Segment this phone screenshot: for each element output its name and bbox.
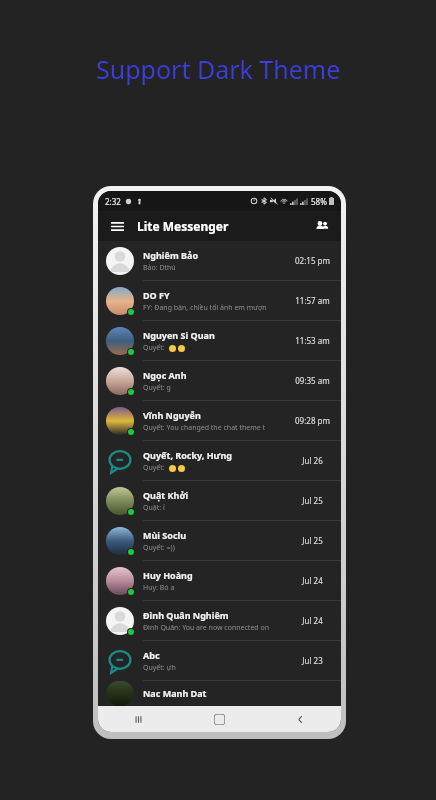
staticText: Jul 25 [302, 495, 323, 506]
button[interactable]: Open navigation menu [107, 216, 127, 236]
button[interactable]: Đình Quân Nghiêm [98, 601, 341, 641]
staticText: Quyết: ựh [143, 663, 176, 673]
button[interactable]: Nguyen Si Quan [98, 321, 341, 361]
staticText: Jul 25 [302, 535, 323, 546]
staticText: Đình Quân: You are now connected on [143, 623, 270, 633]
button[interactable]: DO FY [98, 281, 341, 321]
button[interactable]: Nac Manh Dat [98, 681, 341, 706]
staticText: 58% [311, 196, 327, 207]
staticText: Ngọc Anh [143, 369, 187, 381]
staticText: Jul 24 [302, 615, 323, 626]
staticText: 09:28 pm [295, 415, 330, 426]
button[interactable]: Abc [98, 641, 341, 681]
staticText: FY: Đang bận, chiều tối ảnh em mượn [143, 303, 267, 313]
staticText: 2:32 [105, 196, 121, 207]
staticText: 09:35 am [295, 375, 330, 386]
staticText: 02:15 pm [295, 255, 330, 266]
staticText: Nguyen Si Quan [143, 329, 215, 341]
button[interactable]: Huy Hoàng [98, 561, 341, 601]
staticText: Quyết: [143, 463, 165, 473]
button[interactable]: Nghiêm Bảo [98, 241, 341, 281]
button[interactable]: Contacts [312, 216, 332, 236]
staticText: Abc [143, 649, 160, 661]
staticText: Lite Messenger [137, 218, 229, 234]
staticText: Jul 24 [302, 575, 323, 586]
staticText: Quyết, Rocky, Hưng [143, 449, 232, 461]
staticText: Huy: Bó a [143, 583, 175, 593]
staticText: Đình Quân Nghiêm [143, 609, 229, 621]
staticText: DO FY [143, 289, 170, 301]
staticText: Jul 23 [302, 655, 323, 666]
staticText: Quyết: You changed the chat theme t [143, 423, 266, 433]
button[interactable]: Quật Khởi [98, 481, 341, 521]
staticText: Bảo: Dthú [143, 263, 176, 273]
staticText: Quật Khởi [143, 489, 189, 501]
staticText: Vĩnh Nguyễn [143, 409, 201, 421]
staticText: Quật: ỉ [143, 503, 165, 513]
staticText: 11:53 am [295, 335, 330, 346]
staticText: 11:57 am [295, 295, 330, 306]
button[interactable]: Back [260, 706, 341, 732]
staticText: Huy Hoàng [143, 569, 193, 581]
button[interactable]: Mùi Soclu [98, 521, 341, 561]
button[interactable]: Vĩnh Nguyễn [98, 401, 341, 441]
staticText: Quyết: =)) [143, 543, 175, 553]
button[interactable]: Recent apps [98, 706, 179, 732]
button[interactable]: Quyết, Rocky, Hưng [98, 441, 341, 481]
button[interactable]: Home [179, 706, 260, 732]
staticText: Nghiêm Bảo [143, 249, 199, 261]
staticText: Quyết: g [143, 383, 171, 393]
staticText: Support Dark Theme [96, 52, 341, 86]
staticText: Nac Manh Dat [143, 687, 207, 699]
staticText: Jul 26 [302, 455, 323, 466]
staticText: Quyết: [143, 343, 165, 353]
staticText: Mùi Soclu [143, 529, 187, 541]
button[interactable]: Ngọc Anh [98, 361, 341, 401]
